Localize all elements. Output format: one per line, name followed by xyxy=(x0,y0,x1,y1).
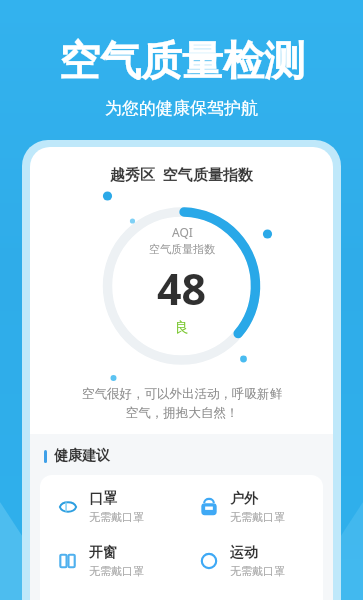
staticText: 48 xyxy=(157,259,207,318)
staticText: 空气很好，可以外出活动，呼吸新鲜 空气，拥抱大自然！ xyxy=(82,386,282,421)
button[interactable]: 口罩 xyxy=(40,487,181,527)
staticText: 开窗 xyxy=(89,544,117,562)
button[interactable]: 户外 xyxy=(181,487,323,527)
staticText: 运动 xyxy=(230,544,258,562)
staticText: 空气质量检测 xyxy=(59,36,305,88)
staticText: 无需戴口罩 xyxy=(89,510,144,524)
staticText: 为您的健康保驾护航 xyxy=(105,98,258,119)
staticText: 无需戴口罩 xyxy=(230,510,285,524)
staticText: 越秀区 空气质量指数 xyxy=(110,164,253,184)
button[interactable]: 运动 xyxy=(181,541,323,581)
staticText: 健康建议 xyxy=(54,447,110,465)
staticText: 良 xyxy=(175,319,189,337)
staticText: AQI xyxy=(172,224,193,240)
staticText: 无需戴口罩 xyxy=(89,564,144,578)
staticText: 口罩 xyxy=(89,490,117,508)
other: 户外 xyxy=(197,495,221,519)
staticText: 空气质量指数 xyxy=(149,242,215,256)
other: 开窗 xyxy=(56,549,80,573)
button[interactable]: 开窗 xyxy=(40,541,181,581)
other: 运动 xyxy=(197,549,221,573)
staticText: 无需戴口罩 xyxy=(230,564,285,578)
other: 口罩 xyxy=(56,495,80,519)
staticText: 户外 xyxy=(230,490,258,508)
